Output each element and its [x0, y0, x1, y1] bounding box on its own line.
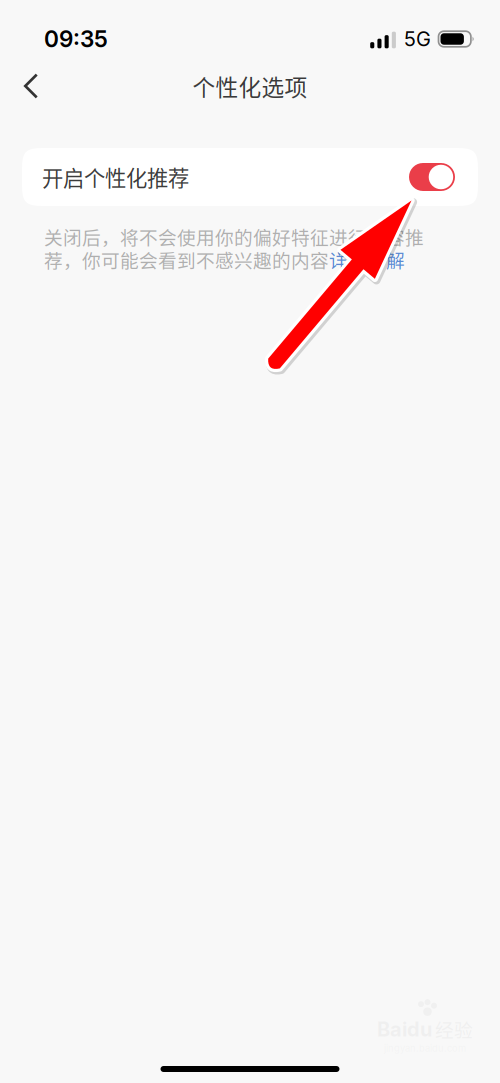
- button[interactable]: 返回: [9, 64, 53, 108]
- staticText: 5G: [404, 27, 431, 51]
- staticText: 个性化选项: [192, 70, 307, 102]
- staticText: 09:35: [44, 25, 108, 53]
- button[interactable]: 详情了解: [329, 246, 405, 273]
- staticText: 荐，你可能会看到不感兴趣的内容: [44, 246, 329, 273]
- staticText: Baidu: [377, 1017, 432, 1041]
- staticText: 开启个性化推荐: [42, 162, 189, 192]
- staticText: 详情了解: [329, 246, 405, 273]
- staticText: 关闭后，将不会使用你的偏好特征进行内容推: [44, 223, 424, 250]
- button[interactable]: 开启个性化推荐: [22, 148, 478, 206]
